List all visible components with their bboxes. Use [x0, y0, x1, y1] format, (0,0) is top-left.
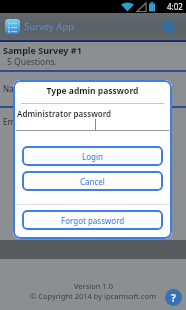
staticText: Version 1.0 [74, 281, 113, 291]
button[interactable] [160, 19, 176, 35]
staticText: Forgot password [61, 215, 125, 226]
staticText: Survey App [24, 20, 75, 33]
button[interactable]: Forgot password [22, 210, 163, 230]
staticText: Login [82, 151, 103, 162]
staticText: Cancel [80, 176, 105, 187]
staticText: Type admin password [13, 85, 172, 97]
staticText: 5 Questions. [7, 56, 57, 68]
staticText: 4:02 [167, 1, 183, 12]
staticText: Name [3, 83, 26, 94]
staticText: © Copyright 2014 by ipcamsoft.com [30, 291, 156, 301]
staticText: Administrator password [17, 108, 112, 119]
staticText: Sample Survey #1 [3, 44, 82, 56]
button[interactable]: Cancel [22, 171, 163, 191]
button[interactable]: ? [165, 289, 182, 306]
staticText: ? [171, 291, 176, 305]
staticText: Email [3, 116, 24, 127]
button[interactable]: Login [22, 146, 163, 166]
